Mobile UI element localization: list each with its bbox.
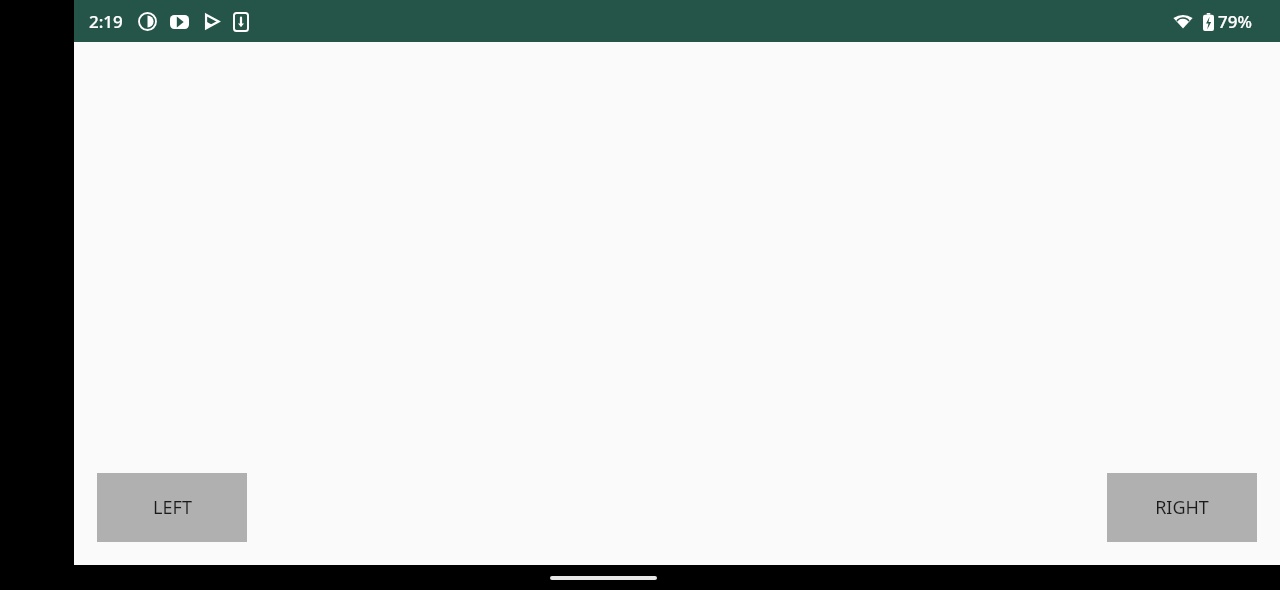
staticText: LEFT: [153, 495, 192, 520]
button[interactable]: LEFT: [97, 473, 247, 542]
button[interactable]: RIGHT: [1107, 473, 1257, 542]
staticText: 2:19: [89, 10, 123, 33]
staticText: RIGHT: [1155, 495, 1209, 520]
staticText: 79%: [1218, 10, 1252, 33]
